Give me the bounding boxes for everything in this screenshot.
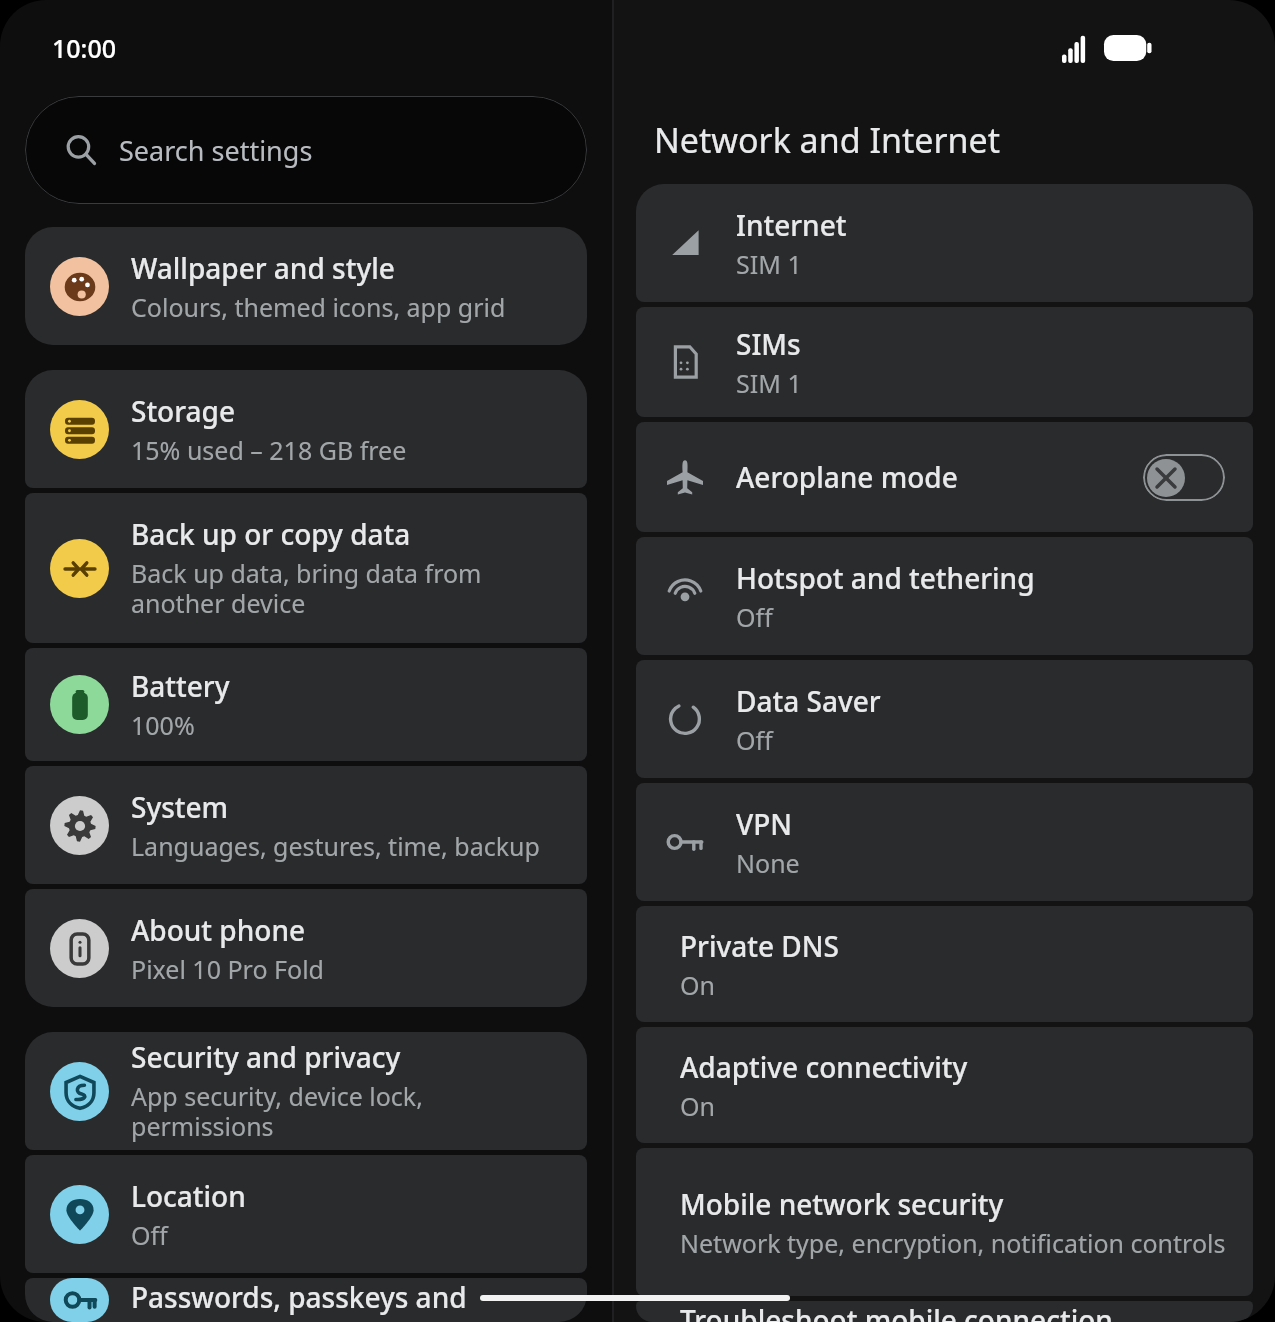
button[interactable]: Data Saver <box>636 660 1253 778</box>
staticText: Off <box>736 600 773 634</box>
staticText: SIMs <box>736 325 801 363</box>
staticText: 10:00 <box>52 31 117 65</box>
button[interactable]: Back up or copy data <box>25 493 587 643</box>
staticText: System <box>131 788 229 826</box>
staticText: Internet <box>736 206 847 244</box>
staticText: Data Saver <box>736 682 881 720</box>
staticText: VPN <box>736 805 793 843</box>
staticText: Mobile network security <box>680 1185 1004 1223</box>
staticText: Troubleshoot mobile connection <box>680 1301 1113 1322</box>
staticText: None <box>736 846 800 880</box>
staticText: 15% used – 218 GB free <box>131 433 407 467</box>
button[interactable]: Search settings <box>25 96 587 204</box>
button[interactable]: SIMs <box>636 307 1253 417</box>
staticText: Off <box>131 1218 168 1252</box>
button[interactable]: Passwords, passkeys and accounts <box>25 1278 587 1322</box>
staticText: Private DNS <box>680 927 839 965</box>
staticText: Location <box>131 1177 246 1215</box>
staticText: Back up data, bring data from another de… <box>131 556 567 621</box>
button[interactable]: VPN <box>636 783 1253 901</box>
staticText: Battery <box>131 667 230 705</box>
staticText: SIM 1 <box>736 366 802 400</box>
staticText: Passwords, passkeys and accounts <box>131 1278 567 1322</box>
button[interactable]: Internet <box>636 184 1253 302</box>
button[interactable]: Private DNS <box>636 906 1253 1022</box>
staticText: Aeroplane mode <box>736 458 1143 496</box>
button[interactable]: Mobile network security <box>636 1148 1253 1296</box>
button[interactable]: Aeroplane mode <box>636 422 1253 532</box>
staticText: Pixel 10 Pro Fold <box>131 952 324 986</box>
staticText: Colours, themed icons, app grid <box>131 290 506 324</box>
staticText: App security, device lock, permissions <box>131 1079 567 1144</box>
button[interactable]: Storage <box>25 370 587 488</box>
staticText: SIM 1 <box>736 247 802 281</box>
staticText: Back up or copy data <box>131 515 411 553</box>
staticText: Security and privacy <box>131 1038 401 1076</box>
staticText: 100% <box>131 708 195 742</box>
staticText: On <box>680 968 715 1002</box>
staticText: On <box>680 1089 715 1123</box>
button[interactable]: Adaptive connectivity <box>636 1027 1253 1143</box>
staticText: About phone <box>131 911 306 949</box>
staticText: Languages, gestures, time, backup <box>131 829 540 863</box>
button[interactable]: System <box>25 766 587 884</box>
button[interactable]: Location <box>25 1155 587 1273</box>
staticText: Storage <box>131 392 235 430</box>
button[interactable]: Security and privacy <box>25 1032 587 1150</box>
staticText: Network and Internet <box>654 117 1000 163</box>
button[interactable]: About phone <box>25 889 587 1007</box>
staticText: Adaptive connectivity <box>680 1048 968 1086</box>
button[interactable]: Hotspot and tethering <box>636 537 1253 655</box>
staticText: Off <box>736 723 773 757</box>
button[interactable]: Troubleshoot mobile connection <box>636 1301 1253 1322</box>
button[interactable]: Wallpaper and style <box>25 227 587 345</box>
staticText: Wallpaper and style <box>131 249 395 287</box>
staticText: Hotspot and tethering <box>736 559 1035 597</box>
staticText: Network type, encryption, notification c… <box>680 1226 1226 1260</box>
button[interactable]: Battery <box>25 648 587 761</box>
staticText: Search settings <box>119 132 313 169</box>
button[interactable]: Aeroplane mode toggle <box>1143 454 1225 501</box>
